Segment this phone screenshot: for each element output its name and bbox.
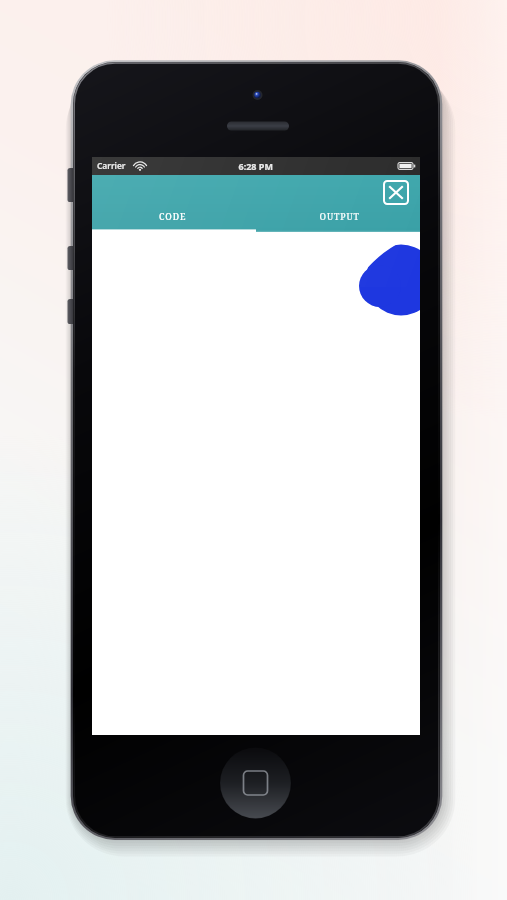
button[interactable]: Close	[378, 175, 414, 210]
button[interactable]: OUTPUT tab	[256, 205, 420, 232]
button[interactable]: Home button	[220, 748, 292, 820]
button[interactable]: CODE tab	[92, 205, 256, 232]
